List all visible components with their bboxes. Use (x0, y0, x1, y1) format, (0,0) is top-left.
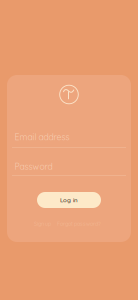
staticText: Email address (14, 131, 69, 142)
button[interactable]: Forgot password? (57, 220, 101, 227)
button[interactable]: Log in (37, 192, 101, 208)
staticText: Log in (60, 196, 78, 204)
staticText: Sign up (34, 220, 51, 227)
button[interactable]: Sign up (34, 220, 51, 227)
staticText: Password (14, 161, 52, 172)
staticText: Forgot password? (57, 220, 101, 227)
